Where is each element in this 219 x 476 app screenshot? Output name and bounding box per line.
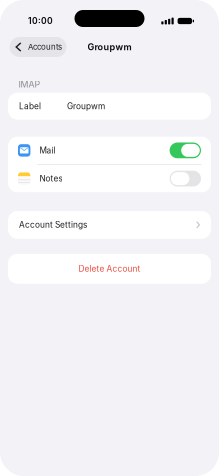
staticText: Groupwm: [87, 41, 131, 52]
staticText: Mail: [39, 145, 55, 155]
staticText: Groupwm: [67, 101, 105, 111]
staticText: Account Settings: [19, 220, 87, 230]
staticText: Notes: [39, 174, 62, 184]
button[interactable]: Delete Account: [8, 254, 211, 284]
button[interactable]: Account Settings: [8, 211, 211, 239]
button[interactable]: Accounts: [9, 37, 66, 57]
staticText: 10:00: [28, 16, 53, 26]
button[interactable]: Mail: [170, 142, 201, 158]
button[interactable]: Notes: [170, 171, 201, 186]
staticText: IMAP: [18, 79, 40, 90]
staticText: Accounts: [28, 42, 62, 52]
staticText: Label: [19, 101, 41, 111]
staticText: Delete Account: [78, 264, 140, 274]
